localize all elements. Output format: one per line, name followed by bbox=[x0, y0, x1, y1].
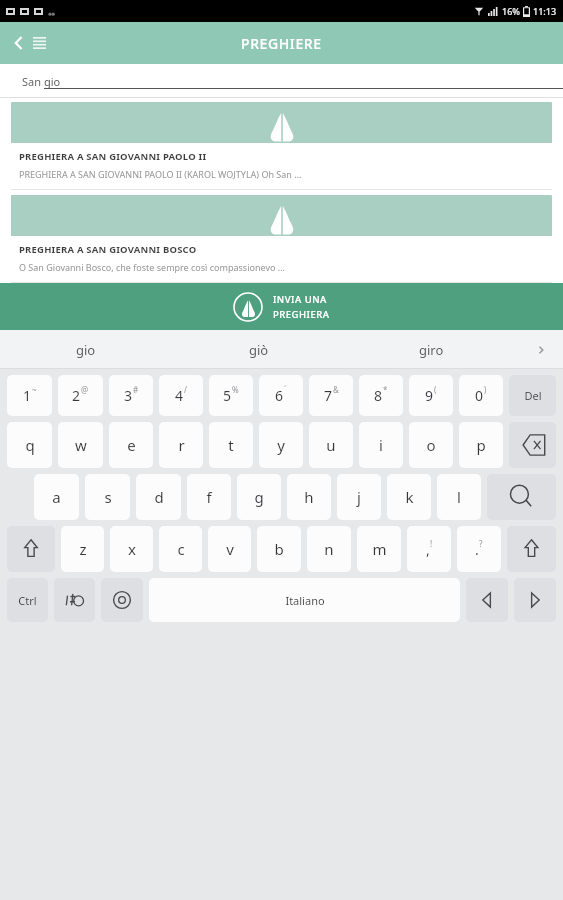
button[interactable]: . bbox=[457, 526, 501, 572]
button[interactable]: 1 bbox=[7, 375, 52, 416]
staticText: 0 bbox=[475, 386, 484, 405]
button[interactable]: 8 bbox=[359, 375, 403, 416]
button[interactable]: giro bbox=[345, 330, 518, 369]
staticText: d bbox=[154, 487, 164, 507]
staticText: a bbox=[52, 487, 61, 507]
button[interactable]: x bbox=[110, 526, 153, 572]
button[interactable]: e bbox=[109, 422, 153, 468]
staticText: Ctrl bbox=[18, 593, 37, 608]
button[interactable]: p bbox=[459, 422, 503, 468]
staticText: k bbox=[405, 487, 414, 507]
staticText: 5 bbox=[223, 386, 232, 405]
button[interactable]: h bbox=[287, 474, 331, 520]
staticText: y bbox=[277, 435, 285, 455]
button[interactable]: d bbox=[136, 474, 181, 520]
staticText: INVIA UNA bbox=[273, 293, 327, 306]
button[interactable]: Settings bbox=[101, 578, 143, 622]
button[interactable]: Del bbox=[509, 375, 556, 416]
staticText: 11:13 bbox=[533, 5, 557, 17]
button[interactable]: 4 bbox=[159, 375, 203, 416]
button[interactable]: Menu bbox=[22, 26, 56, 60]
staticText: ! bbox=[430, 538, 433, 549]
staticText: ~ bbox=[32, 384, 37, 395]
button[interactable]: n bbox=[307, 526, 351, 572]
button[interactable]: , bbox=[407, 526, 451, 572]
button[interactable]: f bbox=[187, 474, 231, 520]
staticText: 2 bbox=[72, 386, 81, 405]
button[interactable]: 7 bbox=[309, 375, 353, 416]
button[interactable]: i bbox=[359, 422, 403, 468]
button[interactable]: m bbox=[357, 526, 401, 572]
staticText: 9 bbox=[425, 386, 434, 405]
button[interactable]: w bbox=[58, 422, 103, 468]
staticText: , bbox=[426, 540, 430, 559]
staticText: * bbox=[383, 384, 388, 395]
button[interactable]: Next bbox=[514, 578, 556, 622]
button[interactable]: 5 bbox=[209, 375, 253, 416]
button[interactable]: Shift bbox=[507, 526, 556, 572]
staticText: x bbox=[128, 539, 136, 559]
staticText: . bbox=[475, 540, 479, 559]
button[interactable]: v bbox=[208, 526, 251, 572]
button[interactable]: giò bbox=[172, 330, 345, 369]
button[interactable]: Italiano bbox=[149, 578, 460, 622]
button[interactable]: Back bbox=[2, 26, 36, 60]
staticText: 6 bbox=[275, 386, 284, 405]
staticText: giro bbox=[419, 341, 444, 359]
staticText: g bbox=[254, 487, 264, 507]
staticText: PREGHIERA A SAN GIOVANNI PAOLO II (KAROL… bbox=[19, 168, 302, 180]
button[interactable]: 9 bbox=[409, 375, 453, 416]
button[interactable]: Ctrl bbox=[7, 578, 48, 622]
button[interactable]: z bbox=[61, 526, 104, 572]
button[interactable]: b bbox=[257, 526, 301, 572]
staticText: gio bbox=[76, 341, 96, 359]
button[interactable]: r bbox=[159, 422, 203, 468]
staticText: gio bbox=[44, 74, 61, 89]
button[interactable]: t bbox=[209, 422, 253, 468]
button[interactable]: c bbox=[159, 526, 202, 572]
button[interactable]: l bbox=[437, 474, 481, 520]
button[interactable]: Shift bbox=[7, 526, 55, 572]
button[interactable]: o bbox=[409, 422, 453, 468]
staticText: PREGHIERE bbox=[241, 34, 322, 53]
button[interactable]: g bbox=[237, 474, 281, 520]
button[interactable]: Previous bbox=[466, 578, 508, 622]
button[interactable]: u bbox=[309, 422, 353, 468]
staticText: u bbox=[326, 435, 336, 455]
button[interactable]: y bbox=[259, 422, 303, 468]
button[interactable]: PREGHIERA A SAN GIOVANNI PAOLO II bbox=[11, 102, 552, 190]
button[interactable]: gio bbox=[0, 330, 172, 369]
staticText: & bbox=[333, 384, 339, 395]
button[interactable]: j bbox=[337, 474, 381, 520]
button[interactable]: 2 bbox=[58, 375, 103, 416]
staticText: 1 bbox=[23, 386, 32, 405]
button[interactable]: San bbox=[0, 64, 563, 98]
button[interactable]: 0 bbox=[459, 375, 503, 416]
button[interactable]: k bbox=[387, 474, 431, 520]
button[interactable]: More suggestions bbox=[518, 330, 563, 369]
button[interactable]: a bbox=[34, 474, 79, 520]
staticText: h bbox=[304, 487, 314, 507]
button[interactable]: INVIA UNA bbox=[0, 283, 563, 330]
staticText: % bbox=[232, 384, 239, 395]
staticText: PREGHIERA A SAN GIOVANNI BOSCO bbox=[19, 243, 197, 256]
button[interactable]: Symbols bbox=[54, 578, 95, 622]
staticText: i bbox=[379, 435, 383, 455]
staticText: q bbox=[25, 435, 35, 455]
staticText: 4 bbox=[175, 386, 184, 405]
staticText: PREGHIERA A SAN GIOVANNI PAOLO II bbox=[19, 150, 207, 163]
button[interactable]: q bbox=[7, 422, 52, 468]
button[interactable]: 3 bbox=[109, 375, 153, 416]
staticText: PREGHIERA bbox=[273, 308, 330, 321]
staticText: 16% bbox=[502, 5, 520, 17]
button[interactable]: 6 bbox=[259, 375, 303, 416]
staticText: b bbox=[274, 539, 284, 559]
staticText: / bbox=[184, 384, 187, 395]
staticText: ( bbox=[434, 384, 437, 395]
button[interactable]: Search bbox=[487, 474, 556, 520]
staticText: Italiano bbox=[285, 593, 325, 608]
button[interactable]: Backspace bbox=[509, 422, 556, 468]
button[interactable]: PREGHIERA A SAN GIOVANNI BOSCO bbox=[11, 195, 552, 283]
staticText: w bbox=[75, 435, 87, 455]
button[interactable]: s bbox=[85, 474, 130, 520]
